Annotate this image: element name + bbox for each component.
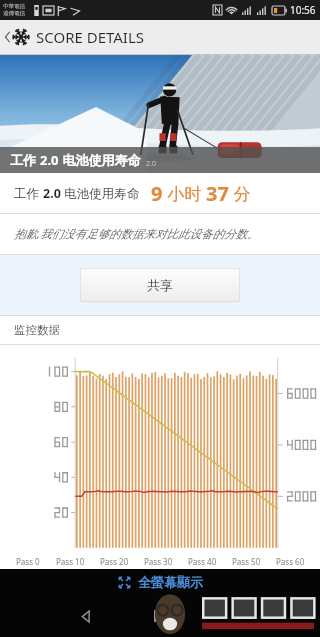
staticText: 10:56 bbox=[290, 3, 316, 17]
staticText: 工作 bbox=[10, 151, 40, 169]
staticText: 共享 bbox=[147, 277, 173, 293]
staticText: 2.0 bbox=[146, 159, 156, 169]
staticText: 小时 bbox=[163, 182, 206, 205]
staticText: 遠傳電信 bbox=[3, 10, 25, 17]
staticText: Pass 20 bbox=[100, 556, 129, 567]
staticText: Pass 0 bbox=[16, 556, 40, 567]
staticText: 9 bbox=[151, 180, 163, 207]
staticText: 抱歉,我们没有足够的数据来对比此设备的分数。 bbox=[14, 226, 259, 242]
staticText: 全螢幕顯示 bbox=[138, 574, 203, 590]
staticText: 中華電信 bbox=[3, 3, 25, 10]
staticText: 电池使用寿命 bbox=[61, 185, 140, 202]
staticText: 电池使用寿命 bbox=[59, 151, 141, 169]
staticText: Pass 10 bbox=[56, 556, 85, 567]
staticText: Pass 60 bbox=[276, 556, 305, 567]
staticText: 2.0 bbox=[43, 185, 61, 202]
button[interactable]: 全螢幕顯示 bbox=[0, 569, 320, 595]
button[interactable]: Back bbox=[0, 20, 320, 54]
button[interactable]: 共享 bbox=[80, 268, 240, 302]
staticText: Pass 40 bbox=[188, 556, 217, 567]
staticText: Pass 50 bbox=[232, 556, 261, 567]
staticText: Pass 30 bbox=[144, 556, 173, 567]
staticText: 工作 bbox=[14, 185, 43, 202]
button[interactable]: Back bbox=[74, 604, 98, 628]
staticText: 37 bbox=[206, 180, 229, 207]
staticText: 分 bbox=[229, 182, 251, 205]
staticText: SCORE DETAILS bbox=[36, 27, 145, 47]
staticText: 监控数据 bbox=[14, 323, 60, 337]
staticText: 2.0 bbox=[40, 151, 59, 169]
button[interactable]: Home bbox=[148, 604, 172, 628]
